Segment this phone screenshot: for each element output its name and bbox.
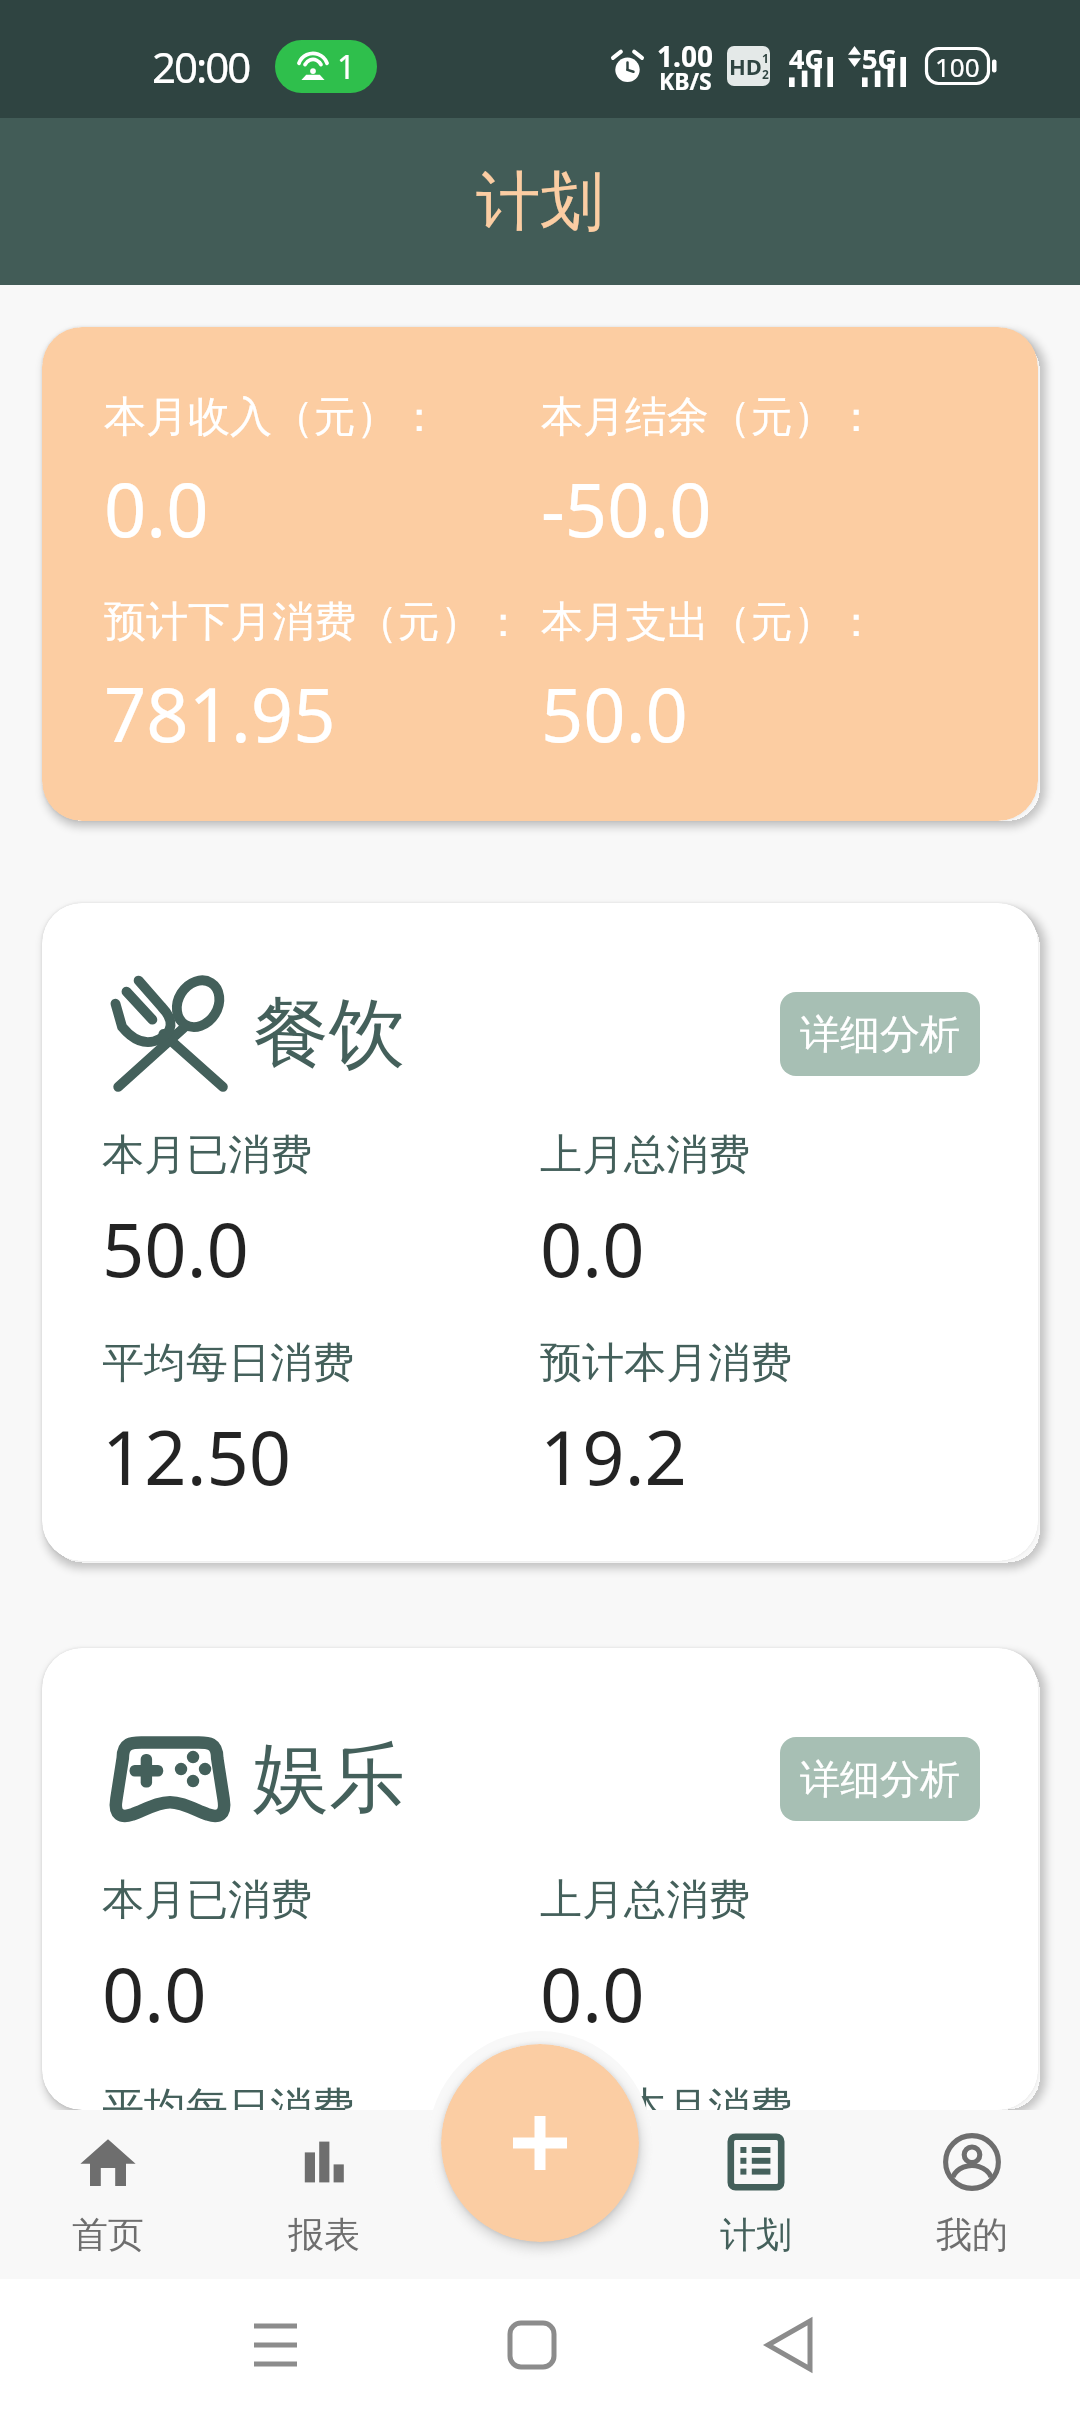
staticText: 本月结余（元）： [541,391,877,444]
staticText: 0.0 [540,1943,645,2044]
staticText: 781.95 [104,663,336,764]
staticText: 4G [789,40,824,77]
staticText: 首页 [72,2212,144,2257]
button[interactable]: 我的 [864,2110,1080,2279]
staticText: 娱乐 [253,1731,405,1827]
button[interactable]: Back [730,2279,850,2412]
staticText: 0.0 [540,1198,645,1299]
button[interactable]: Add [441,2044,639,2242]
staticText: 本月收入（元）： [104,391,440,444]
staticText: 报表 [288,2212,360,2257]
staticText: 本月已消费 [102,1129,312,1182]
staticText: 50.0 [102,1198,249,1299]
staticText: 计划 [476,161,604,242]
button[interactable]: 首页 [0,2110,216,2279]
staticText: 平均每日消费 [102,2082,354,2110]
staticText: 详细分析 [800,1754,960,1804]
staticText: 预计本月消费 [540,2082,792,2110]
staticText: 1 [762,50,769,66]
button[interactable]: Recents [215,2279,335,2412]
staticText: 50.0 [541,663,688,764]
staticText: 详细分析 [800,1009,960,1059]
button[interactable]: 报表 [216,2110,432,2279]
staticText: 19.2 [540,1406,687,1507]
staticText: 12.50 [102,1406,292,1507]
staticText: 20:00 [152,38,250,95]
staticText: 餐饮 [253,986,405,1082]
staticText: 预计本月消费 [540,1337,792,1390]
staticText: 上月总消费 [540,1874,750,1927]
staticText: 预计下月消费（元）： [104,596,524,649]
staticText: 100 [935,49,980,84]
staticText: 计划 [720,2212,792,2257]
staticText: 0.0 [104,458,209,559]
button[interactable]: 详细分析 [780,992,980,1076]
button[interactable]: 计划 [648,2110,864,2279]
staticText: 1 [337,45,356,89]
staticText: 0.0 [102,1943,207,2044]
button[interactable]: 餐饮 [42,903,1038,1561]
staticText: HD [729,51,762,81]
staticText: 我的 [936,2212,1008,2257]
staticText: 本月已消费 [102,1874,312,1927]
staticText: KB/S [659,65,712,96]
staticText: 上月总消费 [540,1129,750,1182]
staticText: 2 [762,66,769,82]
staticText: 1.00 [657,37,713,75]
button[interactable]: 本月收入（元）： [42,327,1038,821]
button[interactable]: Home [472,2279,592,2412]
staticText: 5G [862,40,897,77]
button[interactable]: 详细分析 [780,1737,980,1821]
staticText: 平均每日消费 [102,1337,354,1390]
staticText: -50.0 [541,458,712,559]
button[interactable]: 娱乐 [42,1648,1038,2110]
staticText: 本月支出（元）： [541,596,877,649]
